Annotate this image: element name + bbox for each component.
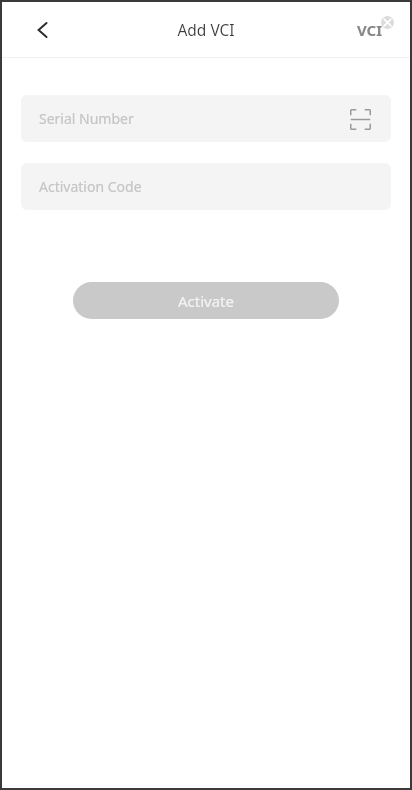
button[interactable]: VCI status disconnected: [352, 6, 400, 54]
button[interactable]: Activation Code: [21, 163, 391, 210]
button[interactable]: Back: [20, 7, 66, 53]
staticText: Add VCI: [177, 19, 235, 40]
staticText: Serial Number: [39, 109, 345, 128]
button[interactable]: Activate: [73, 282, 339, 319]
button[interactable]: Scan barcode: [345, 104, 375, 134]
button[interactable]: Serial Number: [21, 95, 391, 142]
staticText: Activate: [178, 291, 234, 311]
staticText: Activation Code: [39, 177, 375, 196]
staticText: VCI: [357, 20, 383, 40]
